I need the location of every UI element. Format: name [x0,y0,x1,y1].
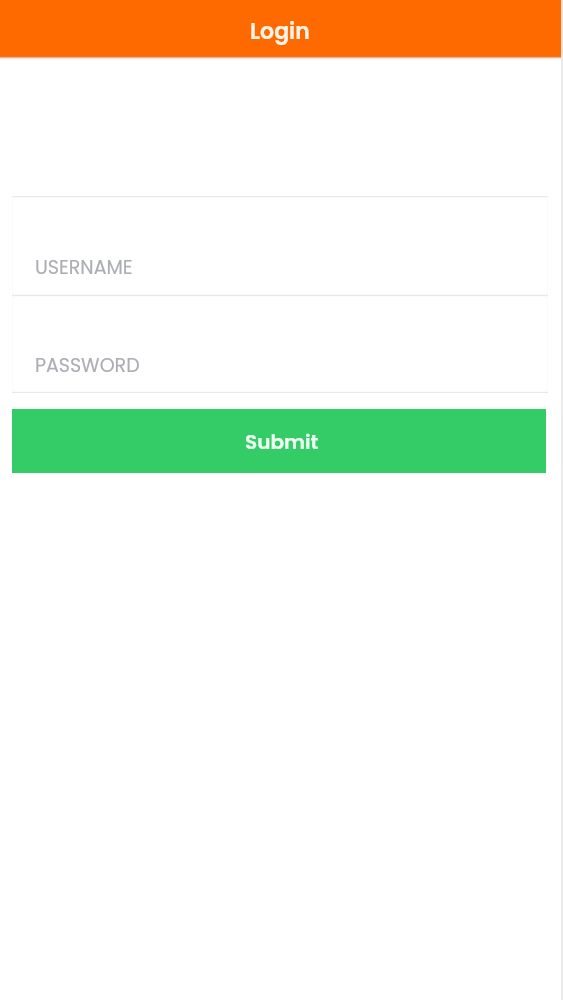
staticText: USERNAME [35,254,133,281]
other: Scroll bar [561,0,563,1000]
staticText: Submit [245,428,319,456]
staticText: PASSWORD [35,352,140,379]
staticText: Login [250,16,310,47]
button[interactable]: USERNAME [12,197,548,295]
button[interactable]: PASSWORD [12,296,548,392]
button[interactable]: Login [0,0,563,56]
button[interactable]: Submit [12,409,546,473]
